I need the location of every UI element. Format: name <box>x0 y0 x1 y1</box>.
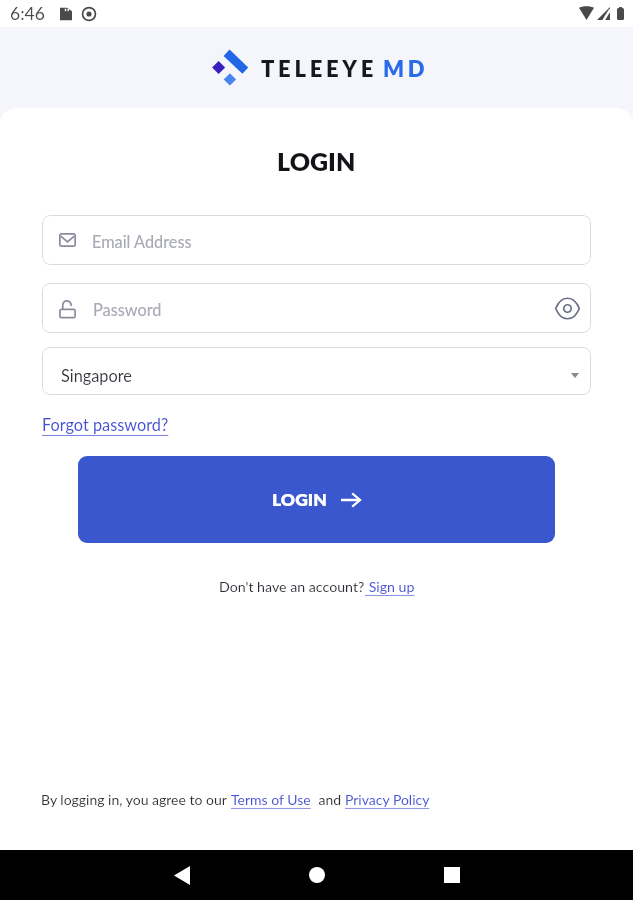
staticText: and <box>315 791 345 808</box>
staticText: Singapore <box>61 366 132 386</box>
button[interactable]: Email Address <box>42 215 591 265</box>
staticText: Email Address <box>92 232 192 252</box>
button[interactable]: Show password <box>552 291 583 325</box>
button[interactable]: Singapore <box>42 347 591 395</box>
staticText: Password <box>93 300 162 320</box>
button[interactable]: Back <box>114 850 249 900</box>
button[interactable]: Password <box>42 283 591 333</box>
button[interactable]: Home <box>249 850 384 900</box>
button[interactable]: LOGIN <box>78 456 555 543</box>
staticText: LOGIN <box>272 489 327 510</box>
staticText: Don't have an account? <box>219 578 365 595</box>
staticText: 6:46 <box>10 3 45 24</box>
button[interactable]: Sign up <box>365 578 415 595</box>
staticText: LOGIN <box>277 146 356 176</box>
button[interactable]: Privacy Policy <box>345 791 433 808</box>
button[interactable]: Forgot password? <box>42 415 169 435</box>
button[interactable]: Terms of Use <box>231 791 315 808</box>
button[interactable]: Recents <box>384 850 519 900</box>
staticText: By logging in, you agree to our <box>41 791 231 808</box>
staticText: MD <box>383 55 429 81</box>
staticText: TELEEYE <box>261 55 378 81</box>
